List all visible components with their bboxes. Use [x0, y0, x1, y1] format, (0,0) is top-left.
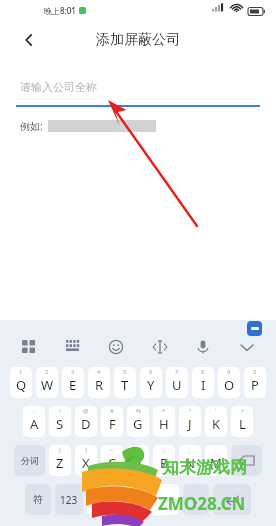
staticText: 4 [97, 368, 101, 376]
staticText: 符 [33, 493, 43, 506]
staticText: R [95, 376, 104, 394]
button[interactable]: ; [153, 445, 175, 476]
button[interactable]: 符 [25, 484, 51, 515]
staticText: C [108, 454, 117, 472]
button[interactable]: Enter [213, 484, 251, 515]
staticText: P [251, 376, 259, 394]
button[interactable]: : [127, 445, 149, 476]
staticText: S [56, 415, 64, 433]
staticText: ! [59, 407, 61, 415]
staticText: ) [85, 446, 87, 454]
button[interactable]: 5 [114, 367, 136, 398]
staticText: ~ [110, 446, 114, 454]
button[interactable]: ， [183, 484, 209, 515]
staticText: D [81, 415, 91, 433]
staticText: 2 [45, 368, 49, 376]
staticText: F [109, 415, 116, 433]
button[interactable]: Clipboard [247, 321, 262, 336]
staticText: L [239, 415, 246, 433]
button[interactable]: 2 [36, 367, 58, 398]
staticText: G [133, 415, 143, 433]
staticText: V [134, 454, 142, 472]
button[interactable]: # [101, 406, 123, 437]
staticText: . [215, 446, 217, 454]
staticText: 例如: [20, 119, 43, 133]
button[interactable]: % [127, 406, 149, 437]
staticText: Y [147, 376, 155, 394]
button[interactable]: " [179, 406, 201, 437]
staticText: ; [163, 446, 165, 454]
button[interactable]: Apps [16, 334, 42, 360]
staticText: J [188, 415, 192, 433]
button[interactable]: ? [231, 406, 253, 437]
staticText: : [137, 446, 139, 454]
button[interactable]: - [23, 406, 45, 437]
staticText: Z [56, 454, 64, 472]
staticText: T [121, 376, 129, 394]
button[interactable]: ' [205, 406, 227, 437]
staticText: 0 [253, 368, 257, 376]
staticText: 晚上8:01 [44, 5, 76, 16]
button[interactable]: ) [75, 445, 97, 476]
staticText: 知末游戏网 [162, 457, 247, 478]
button[interactable]: ~ [101, 445, 123, 476]
staticText: - [33, 407, 35, 415]
staticText: M [210, 454, 222, 472]
staticText: 6 [149, 368, 153, 376]
staticText: E [69, 376, 77, 394]
button[interactable]: Space [87, 484, 179, 515]
staticText: # [110, 407, 114, 415]
staticText: X [82, 454, 90, 472]
button[interactable]: 9 [218, 367, 240, 398]
staticText: 添加屏蔽公司 [96, 31, 180, 49]
staticText: Q [16, 376, 27, 394]
button[interactable]: 1 [10, 367, 32, 398]
button[interactable]: 6 [140, 367, 162, 398]
staticText: 3 [71, 368, 75, 376]
button[interactable]: * [153, 406, 175, 437]
staticText: H [159, 415, 169, 433]
staticText: 请输入公司全称 [20, 80, 97, 94]
button[interactable]: Delete [231, 445, 262, 476]
staticText: 分词 [21, 455, 39, 466]
button[interactable]: @ [75, 406, 97, 437]
staticText: ZMO28.CN [158, 492, 246, 515]
staticText: * [162, 407, 166, 415]
staticText: 8 [201, 368, 205, 376]
staticText: 5 [123, 368, 127, 376]
staticText: 1 [19, 368, 23, 376]
staticText: 123 [60, 493, 78, 507]
staticText: " [189, 407, 192, 415]
staticText: W [41, 376, 54, 394]
button[interactable]: Emoji [103, 334, 129, 360]
staticText: % [136, 407, 141, 415]
staticText: 9 [227, 368, 231, 376]
staticText: ? [241, 407, 244, 415]
staticText: ( [59, 446, 61, 454]
button[interactable]: 123 [55, 484, 83, 515]
staticText: K [212, 415, 221, 433]
staticText: N [185, 454, 195, 472]
staticText: , [189, 446, 191, 454]
button[interactable]: 4 [88, 367, 110, 398]
button[interactable]: 8 [192, 367, 214, 398]
staticText: B [160, 454, 169, 472]
button[interactable]: 7 [166, 367, 188, 398]
button[interactable]: 分词 [14, 445, 45, 476]
button[interactable]: ( [49, 445, 71, 476]
staticText: U [172, 376, 182, 394]
button[interactable]: Back [14, 25, 44, 55]
button[interactable]: Move cursor [147, 334, 173, 360]
button[interactable]: , [179, 445, 201, 476]
button[interactable]: Keyboard [60, 334, 86, 360]
button[interactable]: 3 [62, 367, 84, 398]
staticText: ， [191, 493, 201, 506]
staticText: 7 [175, 368, 179, 376]
staticText: O [224, 376, 235, 394]
staticText: A [30, 415, 39, 433]
button[interactable]: . [205, 445, 227, 476]
button[interactable]: Hide keyboard [234, 334, 260, 360]
button[interactable]: 0 [244, 367, 266, 398]
button[interactable]: ! [49, 406, 71, 437]
button[interactable]: Voice input [190, 334, 216, 360]
